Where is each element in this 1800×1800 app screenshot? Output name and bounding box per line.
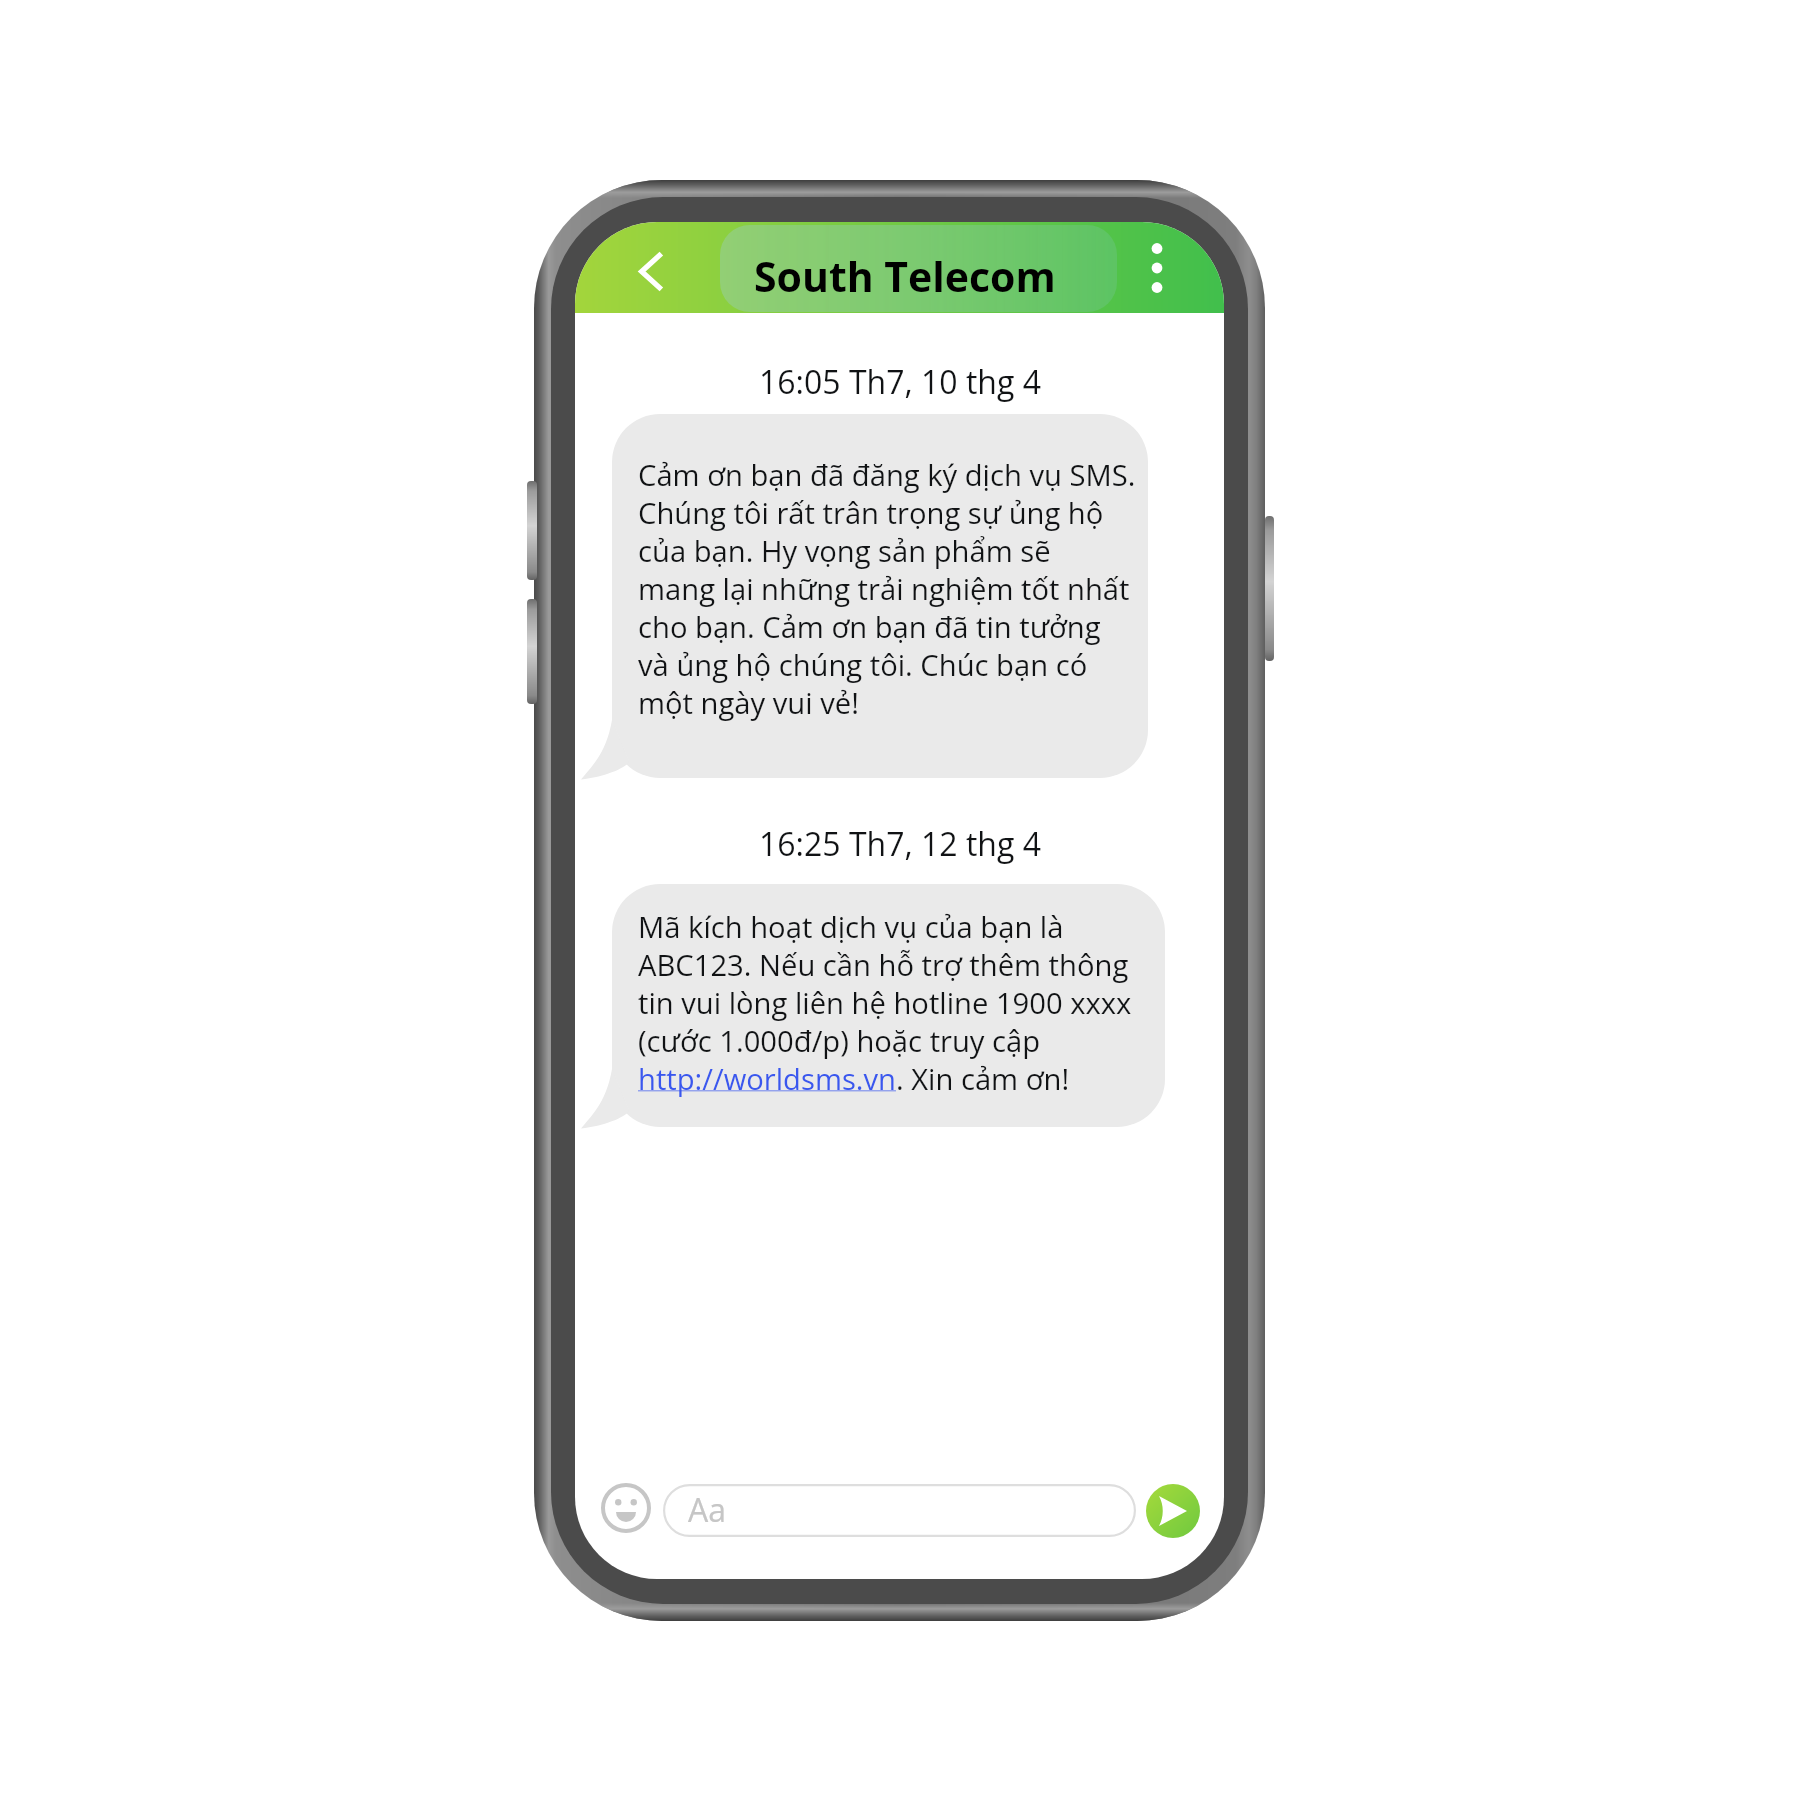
button[interactable]: Cảm ơn bạn đã đăng ký dịch vụ SMS. Chúng… bbox=[612, 414, 1148, 778]
staticText: 16:25 Th7, 12 thg 4 bbox=[759, 822, 1041, 866]
staticText: 16:05 Th7, 10 thg 4 bbox=[759, 360, 1041, 404]
staticText: Aa bbox=[688, 1488, 727, 1532]
staticText: Cảm ơn bạn đã đăng ký dịch vụ SMS. Chúng… bbox=[638, 455, 1136, 722]
staticText: South Telecom bbox=[754, 248, 1056, 304]
button[interactable]: Mã kích hoạt dịch vụ của bạn là ABC123. … bbox=[612, 884, 1165, 1127]
button[interactable]: Back bbox=[621, 241, 681, 301]
button[interactable]: More options bbox=[1128, 239, 1186, 297]
button[interactable]: Emoji bbox=[591, 1473, 661, 1543]
button[interactable]: Aa bbox=[663, 1484, 1136, 1537]
button[interactable]: South Telecom bbox=[720, 225, 1117, 312]
staticText: Mã kích hoạt dịch vụ của bạn là ABC123. … bbox=[638, 907, 1132, 1098]
button[interactable]: Send bbox=[1146, 1484, 1200, 1538]
